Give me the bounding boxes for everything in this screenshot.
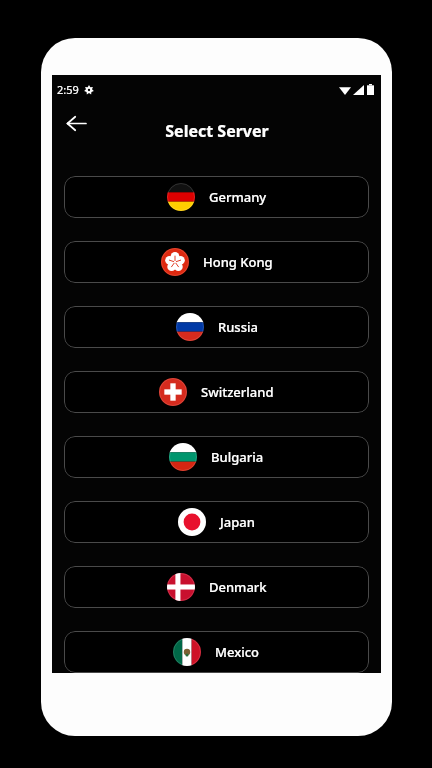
button[interactable]: Back bbox=[58, 105, 94, 141]
button[interactable]: Switzerland bbox=[64, 371, 369, 413]
staticText: 2:59 bbox=[57, 82, 79, 97]
button[interactable]: Russia bbox=[64, 306, 369, 348]
staticText: Japan bbox=[220, 513, 255, 531]
staticText: Germany bbox=[209, 188, 267, 206]
button[interactable]: Germany bbox=[64, 176, 369, 218]
button[interactable]: Hong Kong bbox=[64, 241, 369, 283]
button[interactable]: Bulgaria bbox=[64, 436, 369, 478]
staticText: Select Server bbox=[165, 120, 269, 142]
staticText: Switzerland bbox=[201, 383, 274, 401]
button[interactable]: Denmark bbox=[64, 566, 369, 608]
button[interactable]: Japan bbox=[64, 501, 369, 543]
button[interactable]: Mexico bbox=[64, 631, 369, 673]
staticText: Bulgaria bbox=[211, 448, 264, 466]
staticText: Denmark bbox=[209, 578, 267, 596]
staticText: Mexico bbox=[215, 643, 260, 661]
staticText: Russia bbox=[218, 318, 258, 336]
staticText: Hong Kong bbox=[203, 253, 273, 271]
